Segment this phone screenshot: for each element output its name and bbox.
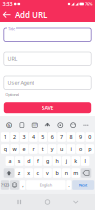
staticText: ?123 — [1, 182, 9, 188]
button[interactable]: k — [71, 156, 80, 166]
button[interactable]: t — [38, 144, 47, 154]
button[interactable]: i — [67, 144, 75, 154]
staticText: , — [22, 181, 23, 189]
staticText: Next — [79, 182, 88, 188]
button[interactable]: Keyboard tool — [29, 120, 40, 131]
button[interactable]: w — [10, 144, 19, 154]
staticText: GIF — [33, 123, 37, 127]
staticText: Optional — [5, 92, 19, 97]
button[interactable]: Keyboard tool — [16, 120, 27, 131]
button[interactable]: b — [53, 168, 61, 178]
button[interactable]: Recents — [67, 195, 85, 209]
staticText: x — [27, 169, 30, 177]
staticText: n — [65, 169, 68, 177]
button[interactable]: . — [66, 180, 71, 190]
staticText: 76% — [85, 1, 93, 7]
button[interactable]: Emoji — [10, 180, 19, 190]
staticText: u — [60, 145, 63, 153]
button[interactable]: 7 — [57, 132, 66, 142]
staticText: r — [32, 145, 34, 153]
staticText: k — [74, 157, 77, 165]
button[interactable]: , — [20, 180, 25, 190]
staticText: English — [40, 182, 52, 188]
button[interactable]: English — [26, 180, 65, 190]
button[interactable]: s — [15, 156, 24, 166]
button[interactable]: q — [1, 144, 9, 154]
button[interactable]: m — [71, 168, 80, 178]
button[interactable]: Shift — [4, 168, 14, 178]
staticText: User Agent — [7, 79, 34, 86]
button[interactable]: n — [62, 168, 71, 178]
button[interactable]: c — [34, 168, 42, 178]
button[interactable]: 5 — [38, 132, 47, 142]
staticText: s — [18, 157, 21, 165]
staticText: Title — [8, 26, 15, 31]
staticText: v — [46, 169, 49, 177]
button[interactable]: z — [15, 168, 24, 178]
button[interactable]: ?123 — [1, 180, 9, 190]
staticText: 9 — [79, 133, 82, 141]
button[interactable]: Backspace — [81, 168, 91, 178]
staticText: g — [46, 157, 49, 165]
button[interactable]: Back — [1, 8, 12, 22]
button[interactable]: 2 — [10, 132, 19, 142]
button[interactable]: 0 — [85, 132, 94, 142]
button[interactable]: 6 — [48, 132, 56, 142]
staticText: q — [4, 145, 7, 153]
button[interactable]: 3 — [20, 132, 28, 142]
button[interactable]: Keyboard tool — [42, 120, 53, 131]
button[interactable]: Keyboard tool — [68, 120, 79, 131]
staticText: j — [66, 157, 67, 165]
staticText: 3:33 — [2, 0, 12, 8]
staticText: 0 — [88, 133, 91, 141]
staticText: 5 — [41, 133, 44, 141]
button[interactable]: f — [34, 156, 42, 166]
button[interactable]: Next — [72, 180, 94, 190]
staticText: G — [8, 122, 11, 128]
staticText: 6 — [51, 133, 54, 141]
button[interactable]: Keyboard tool — [55, 120, 66, 131]
button[interactable]: d — [24, 156, 33, 166]
staticText: h — [55, 157, 58, 165]
button[interactable]: Home — [38, 195, 56, 209]
button[interactable]: a — [6, 156, 14, 166]
staticText: l — [85, 157, 86, 165]
button[interactable]: SAVE — [4, 102, 91, 113]
button[interactable]: o — [76, 144, 85, 154]
staticText: p — [88, 145, 91, 153]
staticText: 8 — [69, 133, 72, 141]
staticText: 7 — [60, 133, 63, 141]
button[interactable]: Back — [10, 195, 28, 209]
staticText: e — [22, 145, 25, 153]
staticText: 2 — [13, 133, 16, 141]
button[interactable]: h — [53, 156, 61, 166]
button[interactable]: e — [20, 144, 28, 154]
button[interactable]: p — [85, 144, 94, 154]
staticText: SAVE — [41, 104, 53, 111]
button[interactable]: r — [29, 144, 38, 154]
button[interactable]: l — [81, 156, 89, 166]
staticText: 3 — [22, 133, 25, 141]
button[interactable]: Keyboard tool — [4, 120, 15, 131]
staticText: 4 — [32, 133, 35, 141]
button[interactable]: g — [43, 156, 52, 166]
button[interactable]: y — [48, 144, 56, 154]
staticText: w — [13, 145, 17, 153]
button[interactable]: v — [43, 168, 52, 178]
staticText: 1 — [4, 133, 7, 141]
staticText: a — [8, 157, 11, 165]
button[interactable]: j — [62, 156, 71, 166]
staticText: d — [27, 157, 30, 165]
staticText: y — [51, 145, 54, 153]
button[interactable]: 1 — [1, 132, 9, 142]
button[interactable]: x — [24, 168, 33, 178]
button[interactable]: u — [57, 144, 66, 154]
staticText: i — [70, 145, 71, 153]
staticText: Add URL — [15, 10, 47, 20]
button[interactable]: 9 — [76, 132, 85, 142]
staticText: b — [55, 169, 58, 177]
button[interactable]: 4 — [29, 132, 38, 142]
staticText: o — [79, 145, 82, 153]
button[interactable]: 8 — [67, 132, 75, 142]
button[interactable]: Keyboard tool — [80, 120, 91, 131]
